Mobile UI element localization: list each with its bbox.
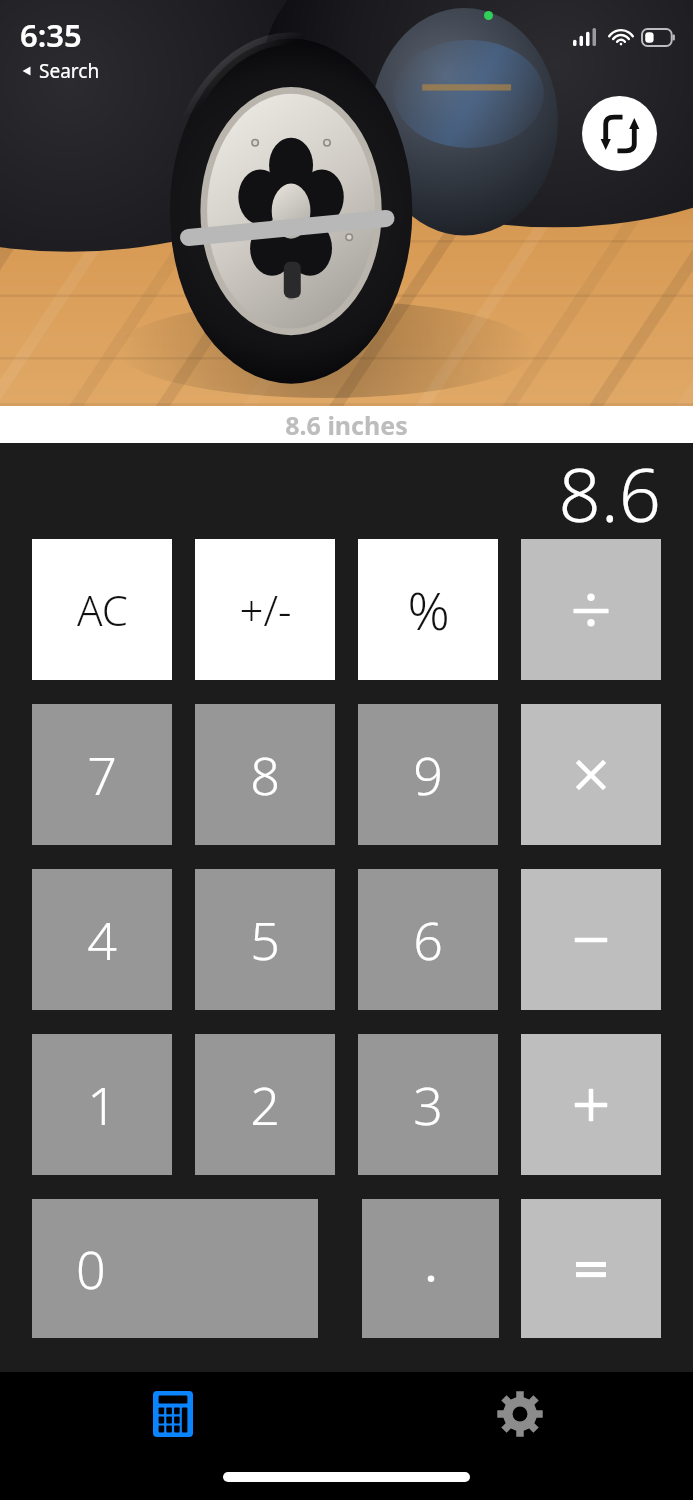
staticText: 6:35 — [20, 14, 82, 56]
staticText: 0 — [76, 1233, 106, 1304]
staticText: 7 — [87, 739, 117, 810]
button[interactable]: 5 — [195, 869, 335, 1010]
button[interactable]: 4 — [32, 869, 172, 1010]
button[interactable]: Multiply — [521, 704, 661, 845]
staticText: 6 — [413, 904, 443, 975]
staticText: 5 — [250, 904, 280, 975]
staticText: +/- — [239, 581, 292, 638]
staticText: 8.6 — [558, 443, 661, 537]
staticText: 2 — [250, 1069, 280, 1140]
button[interactable]: 1 — [32, 1034, 172, 1175]
button[interactable]: 8 — [195, 704, 335, 845]
button[interactable]: % — [358, 539, 498, 680]
staticText: 1 — [87, 1069, 117, 1140]
staticText: % — [407, 574, 450, 645]
button[interactable]: AC — [32, 539, 172, 680]
staticText: 9 — [413, 739, 443, 810]
button[interactable]: Decimal point — [362, 1199, 499, 1338]
button[interactable]: 6 — [358, 869, 498, 1010]
staticText: 4 — [87, 904, 117, 975]
button[interactable]: Divide — [521, 539, 661, 680]
button[interactable]: Settings — [346, 1372, 693, 1456]
button[interactable]: 2 — [195, 1034, 335, 1175]
button[interactable]: 3 — [358, 1034, 498, 1175]
button[interactable]: Calculator — [0, 1372, 346, 1456]
staticText: AC — [77, 581, 128, 638]
button[interactable]: 9 — [358, 704, 498, 845]
staticText: Search — [39, 58, 100, 84]
button[interactable]: Switch measurement mode — [582, 96, 657, 171]
button[interactable]: 7 — [32, 704, 172, 845]
button[interactable]: +/- — [195, 539, 335, 680]
staticText: 8.6 inches — [285, 408, 408, 442]
button[interactable]: Equals — [521, 1199, 661, 1338]
button[interactable]: 0 — [32, 1199, 318, 1338]
button[interactable]: Subtract — [521, 869, 661, 1010]
button[interactable]: Add — [521, 1034, 661, 1175]
staticText: 8 — [250, 739, 280, 810]
staticText: 3 — [413, 1069, 443, 1140]
